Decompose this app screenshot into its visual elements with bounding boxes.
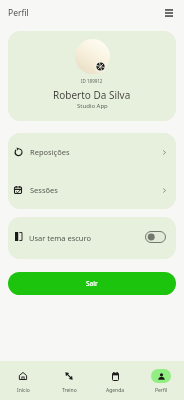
button[interactable]: Treino: [46, 361, 92, 400]
staticText: ID 189912: [81, 78, 103, 84]
button[interactable]: Usar tema escuro: [8, 217, 176, 259]
staticText: Sessões: [30, 185, 58, 195]
button[interactable]: Perfil: [138, 361, 184, 400]
button[interactable]: Menu: [159, 3, 179, 23]
staticText: Sair: [86, 279, 98, 288]
button[interactable]: Agenda: [92, 361, 138, 400]
staticText: Perfil: [155, 387, 168, 394]
button[interactable]: Sessões: [8, 171, 176, 209]
staticText: Studio App: [77, 102, 108, 110]
staticText: Usar tema escuro: [29, 233, 91, 243]
button[interactable]: Reposições: [8, 133, 176, 171]
button[interactable]: Change profile photo: [95, 61, 106, 72]
staticText: Roberto Da Silva: [53, 88, 131, 102]
staticText: Início: [17, 387, 30, 394]
staticText: Perfil: [8, 7, 29, 19]
button[interactable]: Início: [0, 361, 46, 400]
staticText: Reposições: [30, 147, 70, 157]
staticText: Agenda: [106, 387, 125, 394]
staticText: Treino: [62, 387, 77, 394]
button[interactable]: Sair: [8, 272, 176, 295]
